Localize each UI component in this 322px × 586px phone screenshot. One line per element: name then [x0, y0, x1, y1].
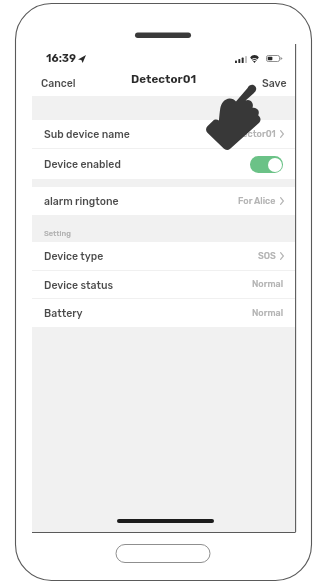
- button[interactable]: Device enabled: [32, 149, 296, 179]
- button[interactable]: Device enabled toggle: [250, 156, 283, 173]
- staticText: SOS: [258, 251, 276, 262]
- staticText: Normal: [252, 308, 284, 319]
- staticText: Sub device name: [44, 128, 130, 140]
- staticText: Setting: [44, 229, 71, 238]
- staticText: Detector01: [131, 72, 197, 86]
- other: Tap pointer: [203, 81, 265, 153]
- staticText: Save: [262, 77, 287, 89]
- staticText: 16:39: [46, 52, 77, 65]
- staticText: Detector01: [227, 129, 276, 140]
- button[interactable]: alarm ringtone: [32, 187, 296, 215]
- staticText: Normal: [252, 279, 284, 290]
- button[interactable]: Device status: [32, 271, 296, 298]
- button[interactable]: Save: [256, 72, 293, 94]
- staticText: Device enabled: [44, 158, 121, 170]
- staticText: For Alice: [238, 196, 276, 207]
- staticText: Device type: [44, 250, 104, 262]
- button[interactable]: Device type: [32, 242, 296, 270]
- staticText: alarm ringtone: [44, 195, 119, 207]
- staticText: Cancel: [41, 77, 76, 89]
- staticText: Device status: [44, 279, 114, 291]
- button[interactable]: Cancel: [35, 72, 82, 94]
- button[interactable]: Sub device name: [32, 120, 296, 148]
- staticText: Battery: [44, 307, 83, 319]
- button[interactable]: Battery: [32, 299, 296, 327]
